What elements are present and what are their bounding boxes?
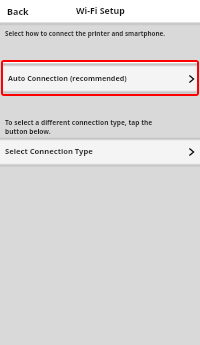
button[interactable]: Select Connection Type — [0, 137, 200, 167]
staticText: Select Connection Type — [5, 146, 93, 156]
button[interactable]: Back — [0, 2, 37, 20]
staticText: Auto Connection (recommended) — [8, 73, 127, 83]
staticText: Back — [7, 5, 29, 17]
staticText: Select how to connect the printer and sm… — [5, 29, 166, 38]
staticText: To select a different connection type, t… — [5, 118, 153, 136]
button[interactable]: Auto Connection (recommended) — [3, 63, 197, 94]
staticText: Wi-Fi Setup — [76, 5, 125, 17]
other: Select Connection Type — [189, 148, 194, 156]
other: Auto Connection (recommended) — [189, 75, 194, 83]
